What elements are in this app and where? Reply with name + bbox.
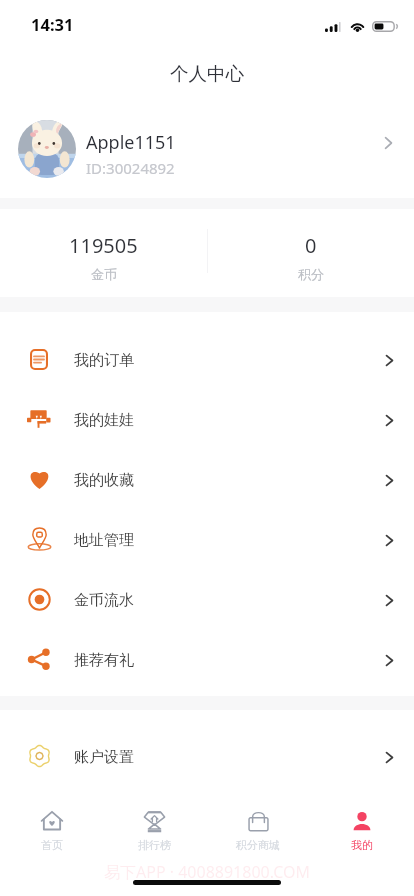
button[interactable]: 金币流水 — [0, 569, 414, 629]
staticText: 金币 — [91, 266, 117, 282]
staticText: 首页 — [41, 838, 63, 852]
button[interactable]: 我的娃娃 — [0, 389, 414, 449]
staticText: 我的 — [351, 838, 373, 852]
button[interactable]: 地址管理 — [0, 509, 414, 569]
staticText: 推荐有礼 — [74, 651, 134, 670]
other: 我的 — [352, 811, 372, 832]
staticText: 地址管理 — [74, 531, 134, 550]
staticText: 积分 — [298, 266, 324, 282]
button[interactable]: 0 — [207, 209, 414, 297]
button[interactable]: 119505 — [0, 209, 207, 297]
button[interactable]: Apple1151 — [0, 94, 414, 198]
staticText: 账户设置 — [74, 748, 134, 767]
button[interactable]: 我的 — [310, 800, 414, 862]
button[interactable]: 我的收藏 — [0, 449, 414, 509]
button[interactable]: 首页 — [0, 800, 103, 862]
button[interactable]: 积分商城 — [206, 800, 310, 862]
staticText: 易下APP · 4008891800.COM — [104, 861, 311, 883]
staticText: 个人中心 — [170, 62, 244, 85]
other: 排行榜 — [144, 811, 165, 832]
staticText: 积分商城 — [236, 838, 280, 852]
other: 积分商城 — [248, 811, 269, 832]
staticText: ID:30024892 — [86, 158, 175, 178]
other: 首页 — [41, 811, 63, 832]
staticText: Apple1151 — [86, 130, 176, 155]
button[interactable]: 推荐有礼 — [0, 629, 414, 689]
button[interactable]: 我的订单 — [0, 329, 414, 389]
button[interactable]: 排行榜 — [103, 800, 206, 862]
staticText: 我的收藏 — [74, 471, 134, 490]
staticText: 0 — [305, 232, 317, 259]
staticText: 我的订单 — [74, 351, 134, 370]
staticText: 我的娃娃 — [74, 411, 134, 430]
staticText: 14:31 — [31, 13, 74, 35]
button[interactable]: 账户设置 — [0, 726, 414, 786]
staticText: 119505 — [69, 232, 138, 259]
staticText: 金币流水 — [74, 591, 134, 610]
staticText: 排行榜 — [138, 838, 171, 852]
